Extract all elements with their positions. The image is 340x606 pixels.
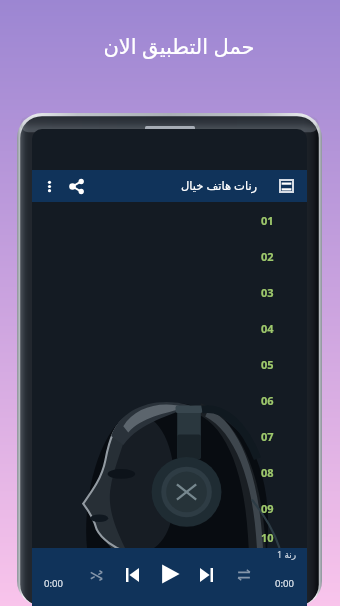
staticText: 01 [261,213,274,228]
button[interactable]: 04 [32,310,307,346]
button[interactable]: Play [157,561,183,587]
staticText: 04 [261,321,274,336]
button[interactable]: 05 [32,346,307,382]
staticText: 07 [261,429,274,444]
staticText: 0:00 [44,577,63,590]
staticText: 08 [261,465,274,480]
button[interactable]: Previous [120,563,144,587]
button[interactable]: 03 [32,274,307,310]
button[interactable]: Shuffle [84,563,108,587]
staticText: حمل التطبيق الان [103,32,255,61]
staticText: 05 [261,357,274,372]
staticText: رنة 1 [277,548,297,560]
button[interactable]: More options [38,175,60,197]
staticText: رنات هاتف خيال [181,178,258,194]
button[interactable]: 02 [32,238,307,274]
button[interactable]: 08 [32,454,307,490]
staticText: 10 [261,530,274,545]
staticText: 06 [261,393,274,408]
button[interactable]: Next [194,563,218,587]
staticText: 03 [261,285,274,300]
button[interactable]: 07 [32,418,307,454]
button[interactable]: Share [66,175,88,197]
staticText: 02 [261,249,274,264]
button[interactable]: 06 [32,382,307,418]
staticText: 0:00 [275,577,294,590]
button[interactable]: رنة 1 [277,547,301,560]
button[interactable]: Menu [275,175,297,197]
button[interactable]: 01 [32,202,307,238]
button[interactable]: Repeat [232,563,256,587]
button[interactable]: 09 [32,490,307,526]
button[interactable]: 10 [32,526,307,548]
staticText: 09 [261,501,274,516]
